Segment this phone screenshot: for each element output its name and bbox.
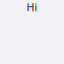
staticText: Hi <box>26 0 37 14</box>
